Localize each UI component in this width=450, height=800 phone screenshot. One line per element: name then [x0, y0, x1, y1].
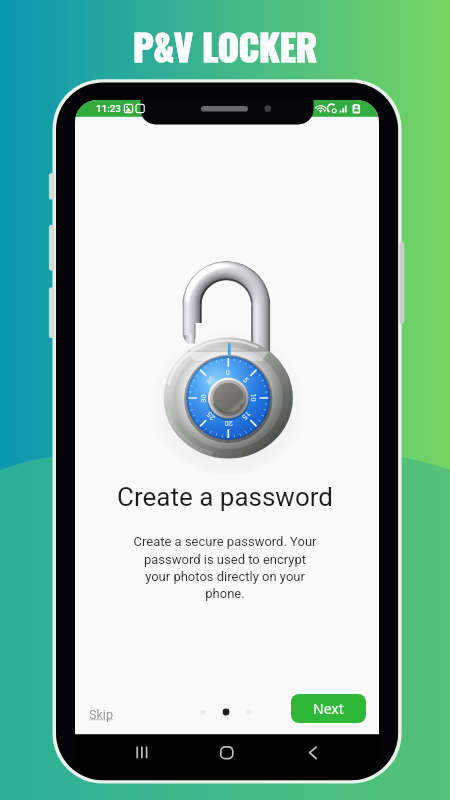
staticText: Next: [313, 699, 344, 718]
staticText: P&V LOCKER: [133, 19, 318, 72]
button[interactable]: Skip: [86, 704, 116, 725]
staticText: Create a secure password. Your password …: [130, 534, 320, 601]
staticText: Skip: [89, 707, 113, 722]
staticText: 11:23: [96, 103, 121, 114]
button[interactable]: Next: [291, 694, 366, 723]
staticText: Create a password: [117, 482, 333, 512]
